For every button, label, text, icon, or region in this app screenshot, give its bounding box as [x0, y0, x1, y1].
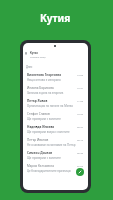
staticText: Ще проверим с колегите: [27, 117, 61, 121]
staticText: Виолетова Георгиева: [27, 73, 62, 77]
staticText: Нещо отново е изгоряло: [27, 78, 61, 82]
button[interactable]: Илияна Борисова: [23, 86, 88, 99]
button[interactable]: Петър Иванов: [23, 138, 88, 151]
staticText: Мария Кънчовска: [27, 164, 54, 168]
staticText: Кутия: [40, 11, 71, 25]
staticText: 09:12: [77, 138, 84, 141]
staticText: Петър Иванов: [27, 138, 49, 142]
button[interactable]: Мария Кънчовска: [23, 164, 88, 177]
staticText: Це благодарителните празници: [27, 169, 71, 173]
button[interactable]: Надежда Илиева: [23, 125, 88, 138]
staticText: Ще проверим вчера с колегите: [27, 130, 70, 134]
staticText: 07:55: [77, 164, 84, 167]
button[interactable]: Петър Янков: [23, 99, 88, 112]
staticText: 08:30: [77, 151, 84, 154]
staticText: Симеон Донков: [27, 151, 53, 155]
staticText: Започва в дата на вторник: [27, 91, 64, 95]
staticText: Ще проверим с колегите: [27, 156, 61, 160]
staticText: Надежда Илиева: [27, 125, 55, 129]
staticText: Основна поща: [30, 56, 46, 59]
staticText: Петър Янков: [27, 99, 48, 103]
staticText: 12:41: [77, 86, 84, 89]
button[interactable]: Menu: [25, 52, 27, 54]
staticText: 11:58: [77, 99, 84, 102]
button[interactable]: Виолетова Георгиева: [23, 73, 88, 86]
staticText: Стефан Славов: [27, 112, 50, 116]
staticText: Илияна Борисова: [27, 86, 54, 90]
staticText: Днес: [26, 65, 33, 69]
button[interactable]: Симеон Донков: [23, 151, 88, 164]
staticText: 13:05: [77, 73, 84, 76]
button[interactable]: Стефан Славов: [23, 112, 88, 125]
staticText: Не очаквахме за заглавие на Петър: [27, 143, 76, 147]
button[interactable]: Compose: [76, 168, 84, 176]
staticText: Кутия: [30, 51, 38, 55]
staticText: 10:22: [77, 112, 84, 115]
staticText: Организация по питане на Митко: [27, 104, 73, 108]
staticText: 09:47: [77, 125, 84, 128]
